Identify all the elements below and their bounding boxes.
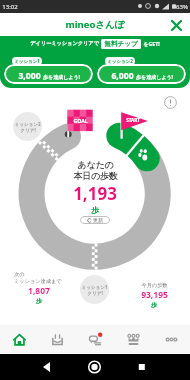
button[interactable]: More (152, 325, 190, 354)
button[interactable]: Home (0, 325, 38, 354)
button[interactable]: Messages (76, 325, 114, 354)
staticText: ミッション2 (107, 58, 133, 64)
staticText: 63% (176, 3, 188, 11)
staticText: ミッション1 (14, 58, 40, 64)
button[interactable]: ミッション1 (80, 275, 109, 304)
staticText: 歩 (36, 297, 42, 305)
staticText: 次の (14, 271, 64, 278)
button[interactable]: ミッション2 (13, 112, 42, 141)
staticText: GOAL (73, 117, 88, 124)
staticText: 今月の歩数 (141, 282, 168, 289)
staticText: 歩 (91, 205, 99, 215)
staticText: をGET! (143, 40, 160, 47)
button[interactable]: Close (167, 16, 185, 34)
button[interactable]: 6,000 (97, 57, 186, 84)
staticText: デイリーミッションクリアで (30, 40, 99, 47)
staticText: 1,807 (28, 285, 50, 297)
button[interactable]: 3,000 (4, 57, 93, 84)
staticText: ミッション1 (81, 284, 108, 290)
staticText: 歩 (151, 301, 157, 309)
staticText: 更新 (93, 217, 103, 223)
staticText: ミッション達成まで (14, 278, 64, 285)
staticText: START (126, 117, 140, 123)
staticText: 93,195 (141, 289, 168, 301)
staticText: 歩を達成しよう! (43, 74, 80, 81)
staticText: 無料チップ (104, 40, 138, 48)
staticText: mineoさんぽ (65, 18, 125, 31)
staticText: クリア! (87, 290, 103, 296)
staticText: 6,000 (111, 70, 134, 82)
staticText: 3,000 (18, 70, 41, 82)
staticText: 13:02 (2, 3, 18, 11)
staticText: クリア! (20, 127, 36, 133)
staticText: 本日の歩数 (73, 171, 118, 182)
staticText: あなたの (77, 160, 114, 171)
button[interactable]: Store (114, 325, 152, 354)
staticText: 1,193 (73, 182, 117, 205)
button[interactable]: Downloads (38, 325, 76, 354)
staticText: ミッション2 (14, 121, 41, 127)
button[interactable]: Information (164, 96, 177, 109)
button[interactable]: 更新 (80, 216, 110, 224)
staticText: 歩を達成しよう! (136, 74, 173, 81)
